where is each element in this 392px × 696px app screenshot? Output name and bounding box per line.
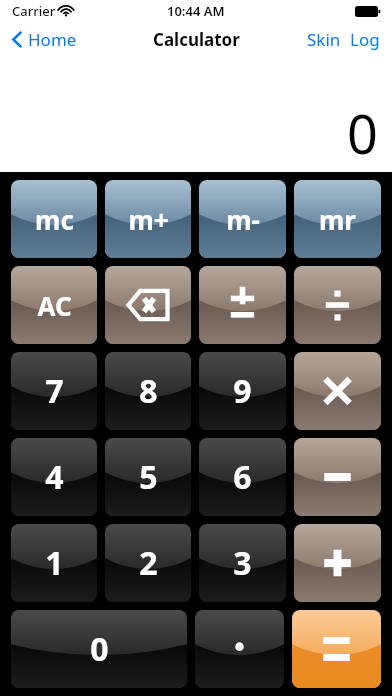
button[interactable] bbox=[195, 610, 284, 688]
staticText: mc bbox=[35, 202, 74, 237]
button[interactable]: 2 bbox=[105, 524, 191, 602]
button[interactable] bbox=[292, 610, 381, 688]
button[interactable] bbox=[294, 524, 381, 602]
staticText: 0 bbox=[347, 96, 378, 170]
button[interactable] bbox=[105, 266, 191, 344]
button[interactable]: 5 bbox=[105, 438, 191, 516]
button[interactable]: mc bbox=[11, 180, 97, 258]
other: Equals bbox=[292, 610, 381, 688]
other: Divide bbox=[294, 266, 381, 344]
button[interactable]: Home bbox=[12, 28, 77, 51]
button[interactable]: 6 bbox=[199, 438, 286, 516]
button[interactable]: 9 bbox=[199, 352, 286, 430]
button[interactable] bbox=[294, 438, 381, 516]
staticText: Calculator bbox=[153, 28, 240, 51]
button[interactable]: Skin bbox=[307, 28, 341, 51]
button[interactable] bbox=[294, 352, 381, 430]
staticText: 3 bbox=[233, 541, 252, 585]
button[interactable]: AC bbox=[11, 266, 97, 344]
staticText: 7 bbox=[45, 369, 64, 413]
other: Plus bbox=[294, 524, 381, 602]
staticText: 0 bbox=[90, 627, 109, 671]
staticText: 9 bbox=[233, 369, 252, 413]
button[interactable] bbox=[199, 266, 286, 344]
button[interactable]: 8 bbox=[105, 352, 191, 430]
button[interactable]: 4 bbox=[11, 438, 97, 516]
staticText: 8 bbox=[139, 369, 158, 413]
staticText: 6 bbox=[233, 455, 252, 499]
button[interactable]: Log bbox=[350, 28, 380, 51]
staticText: 4 bbox=[45, 455, 64, 499]
other: Minus bbox=[294, 438, 381, 516]
button[interactable]: 0 bbox=[11, 610, 187, 688]
staticText: 10:44 AM bbox=[167, 2, 225, 20]
other: Multiply bbox=[294, 352, 381, 430]
button[interactable]: 1 bbox=[11, 524, 97, 602]
staticText: 5 bbox=[139, 455, 158, 499]
other: Plus minus bbox=[199, 266, 286, 344]
staticText: 1 bbox=[45, 541, 64, 585]
button[interactable]: 3 bbox=[199, 524, 286, 602]
button[interactable] bbox=[294, 266, 381, 344]
staticText: mr bbox=[319, 202, 356, 237]
staticText: m+ bbox=[128, 202, 169, 237]
staticText: AC bbox=[37, 288, 72, 323]
button[interactable]: 7 bbox=[11, 352, 97, 430]
other: Backspace bbox=[105, 266, 191, 344]
staticText: 2 bbox=[139, 541, 158, 585]
staticText: m- bbox=[226, 202, 260, 237]
button[interactable]: mr bbox=[294, 180, 381, 258]
button[interactable]: m- bbox=[199, 180, 286, 258]
staticText: Home bbox=[28, 28, 77, 51]
button[interactable]: m+ bbox=[105, 180, 191, 258]
staticText: Carrier bbox=[12, 2, 56, 20]
other: Decimal point bbox=[195, 610, 284, 688]
